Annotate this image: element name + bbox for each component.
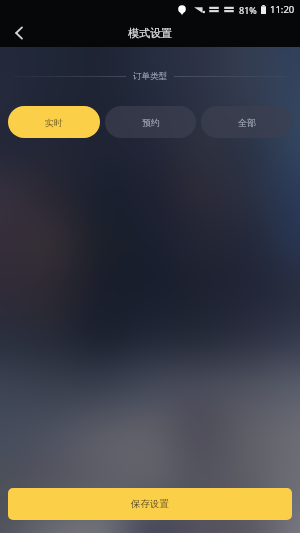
button[interactable]: 预约 [105, 106, 196, 138]
button[interactable]: 全部 [201, 106, 292, 138]
staticText: 订单类型 [133, 71, 167, 82]
staticText: 预约 [142, 117, 160, 128]
staticText: 11:20 [270, 3, 295, 16]
button[interactable]: Back [7, 21, 31, 45]
button[interactable]: 保存设置 [8, 488, 292, 520]
staticText: 81% [239, 4, 257, 16]
staticText: 全部 [238, 117, 256, 128]
button[interactable]: 实时 [8, 106, 100, 138]
staticText: 保存设置 [131, 498, 169, 510]
staticText: 实时 [45, 117, 63, 128]
staticText: 模式设置 [128, 26, 172, 40]
